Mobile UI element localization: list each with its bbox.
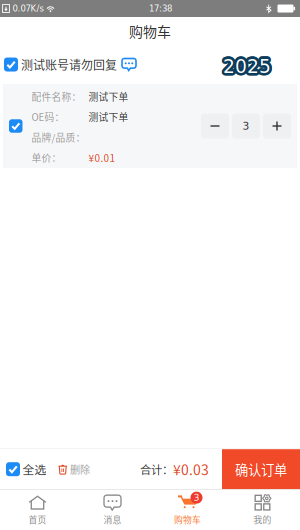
staticText: 首页 (28, 513, 46, 526)
staticText: 2025 (220, 56, 268, 77)
button[interactable]: 3 (150, 490, 225, 530)
staticText: 2025 (225, 57, 273, 78)
staticText: 2025 (221, 56, 269, 77)
staticText: 合计： (140, 461, 173, 477)
staticText: 单价： (31, 151, 61, 165)
button[interactable]: Contact seller (117, 48, 136, 80)
staticText: 删除 (70, 462, 90, 477)
button[interactable]: Decrease quantity (201, 113, 229, 138)
staticText: 2025 (224, 58, 272, 80)
button[interactable] (0, 47, 21, 81)
staticText: 2025 (224, 55, 272, 76)
staticText: 2025 (223, 57, 271, 79)
staticText: 2025 (225, 54, 273, 75)
staticText: 2025 (221, 57, 269, 79)
staticText: 确认订单 (235, 459, 287, 479)
staticText: 0.07K/s (12, 3, 43, 13)
staticText: 2025 (223, 53, 271, 75)
staticText: 2025 (222, 53, 270, 75)
button[interactable]: 删除 (46, 450, 90, 489)
staticText: 2025 (221, 54, 269, 75)
staticText: ¥0.03 (173, 459, 209, 479)
staticText: 配件名称： (31, 89, 81, 103)
staticText: 2025 (221, 57, 269, 78)
staticText: 测试下单 (88, 110, 128, 124)
staticText: 购物车 (174, 513, 201, 526)
button[interactable] (3, 97, 29, 155)
staticText: OE码： (31, 110, 64, 124)
button[interactable]: 我的 (225, 490, 300, 530)
button[interactable]: 全选 (0, 449, 46, 490)
staticText: 全选 (22, 461, 46, 478)
staticText: 2025 (226, 56, 274, 77)
staticText: 2025 (222, 57, 270, 79)
staticText: 2025 (223, 58, 271, 80)
staticText: 2025 (222, 54, 270, 76)
staticText: 品牌/品质： (31, 130, 85, 144)
staticText: 购物车 (129, 21, 171, 41)
staticText: 3 (193, 492, 199, 503)
staticText: 2025 (221, 55, 269, 76)
staticText: 2025 (224, 56, 272, 78)
staticText: 2025 (224, 56, 272, 77)
staticText: 我的 (253, 513, 271, 526)
staticText: 17:38 (149, 3, 172, 13)
button[interactable]: Increase quantity (263, 113, 291, 138)
button[interactable]: 消息 (75, 490, 150, 530)
staticText: 2025 (224, 53, 272, 75)
staticText: 2025 (225, 55, 273, 76)
staticText: 3 (242, 120, 249, 132)
staticText: 2025 (222, 56, 270, 78)
staticText: 2025 (223, 54, 271, 76)
button[interactable]: 首页 (0, 490, 75, 530)
staticText: ¥0.01 (88, 150, 115, 165)
staticText: 2025 (225, 57, 273, 79)
staticText: 测试下单 (88, 89, 128, 103)
staticText: 测试账号请勿回复 (21, 56, 117, 73)
button[interactable]: 确认订单 (222, 449, 300, 489)
staticText: 2025 (222, 55, 270, 76)
staticText: 2025 (223, 56, 271, 77)
staticText: 消息 (103, 513, 121, 526)
staticText: 2025 (222, 58, 270, 80)
